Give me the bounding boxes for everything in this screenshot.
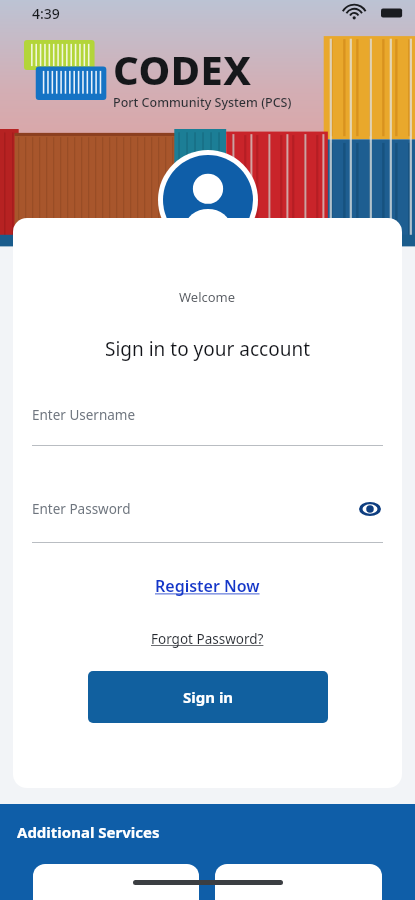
staticText: Welcome	[179, 288, 236, 306]
staticText: Register Now	[155, 575, 260, 597]
button[interactable]: Show password	[357, 496, 383, 522]
button[interactable]: Register Now	[149, 569, 266, 603]
staticText: Additional Services	[17, 822, 160, 842]
staticText: Sign in	[183, 687, 234, 707]
other: Profile	[163, 155, 253, 245]
button[interactable]: Service 1	[33, 864, 199, 900]
staticText: 4:39	[32, 4, 60, 23]
button[interactable]: Sign in	[88, 671, 328, 723]
button[interactable]: Forgot Password?	[146, 625, 269, 653]
staticText: Enter Username	[32, 406, 136, 424]
staticText: Enter Password	[32, 500, 357, 518]
staticText: Port Community System (PCS)	[113, 94, 292, 111]
staticText: Sign in to your account	[105, 336, 311, 362]
button[interactable]: Service 2	[215, 864, 382, 900]
staticText: CODEX	[113, 42, 252, 96]
staticText: Forgot Password?	[151, 630, 264, 648]
